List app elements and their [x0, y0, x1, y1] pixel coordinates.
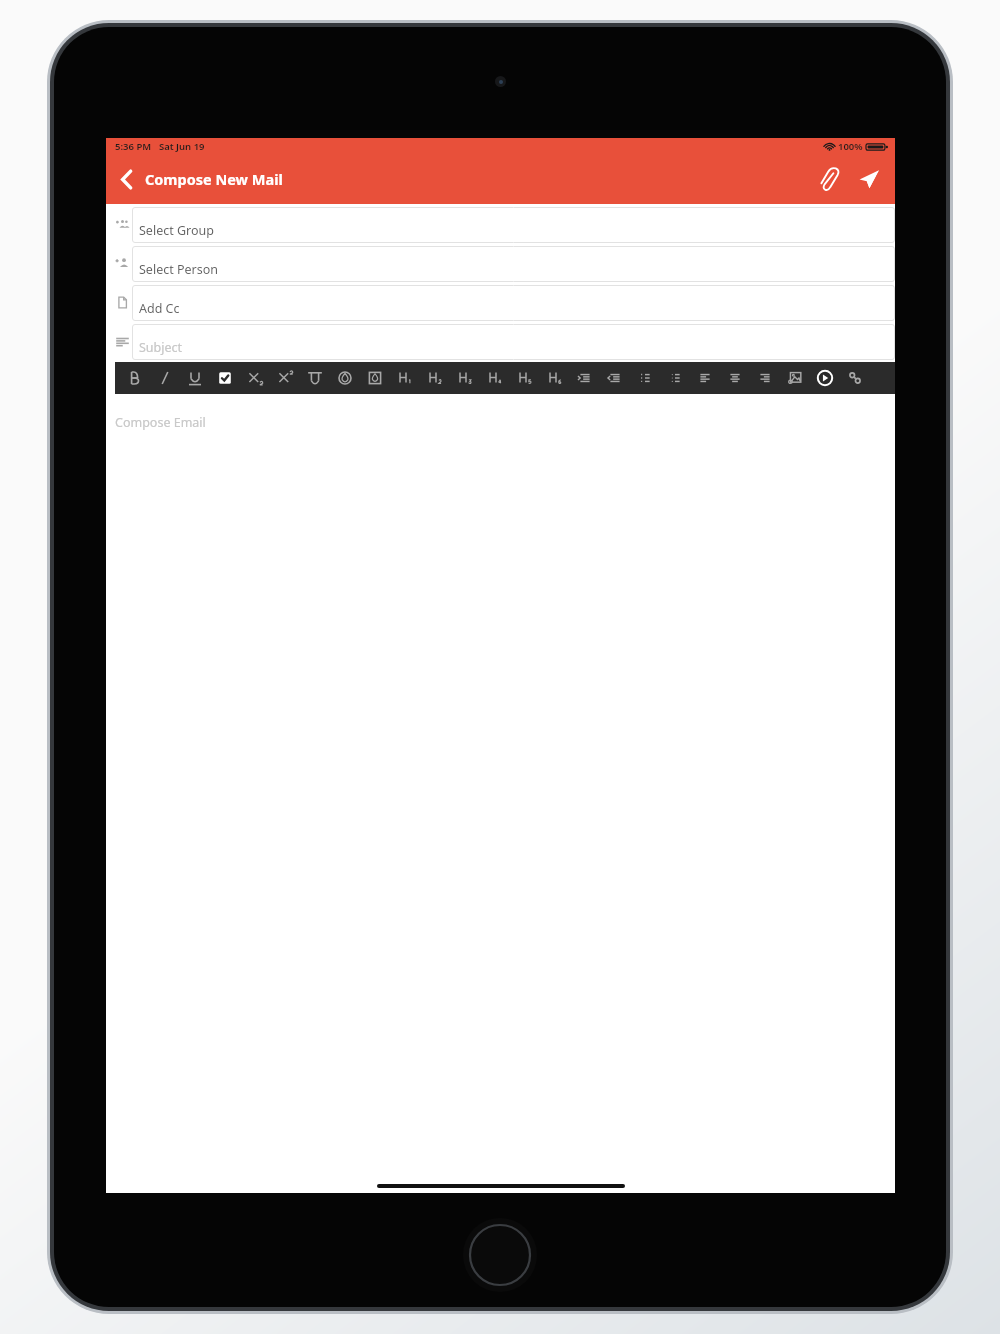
button[interactable]: Bulleted list: [660, 362, 690, 394]
button[interactable]: Subject: [106, 321, 895, 360]
staticText: 100%: [838, 140, 863, 153]
button[interactable]: Back: [111, 164, 283, 194]
button[interactable]: Checklist: [210, 362, 240, 394]
button[interactable]: Heading 6: [540, 362, 570, 394]
button[interactable]: Increase indent: [570, 362, 600, 394]
button[interactable]: Strikethrough: [300, 362, 330, 394]
button[interactable]: Add Cc: [106, 282, 895, 321]
button[interactable]: Decrease indent: [600, 362, 630, 394]
button[interactable]: Highlight color: [360, 362, 390, 394]
button[interactable]: Insert link: [840, 362, 870, 394]
staticText: Select Person: [139, 261, 219, 278]
button[interactable]: Underline: [180, 362, 210, 394]
button[interactable]: Numbered list: [630, 362, 660, 394]
staticText: Compose New Mail: [145, 169, 283, 189]
button[interactable]: Text color: [330, 362, 360, 394]
button[interactable]: Bold: [120, 362, 150, 394]
button[interactable]: Send: [851, 161, 887, 197]
button[interactable]: Select Person: [106, 243, 895, 282]
staticText: 5:36 PM: [115, 140, 152, 153]
button[interactable]: Attach file: [811, 161, 847, 197]
button[interactable]: Heading 2: [420, 362, 450, 394]
button[interactable]: Align right: [750, 362, 780, 394]
button[interactable]: Subscript: [240, 362, 270, 394]
staticText: Sat Jun 19: [159, 140, 205, 153]
staticText: Select Group: [139, 222, 214, 239]
button[interactable]: Insert media: [810, 362, 840, 394]
button[interactable]: Italic: [150, 362, 180, 394]
button[interactable]: Select Group: [106, 204, 895, 243]
button[interactable]: Heading 4: [480, 362, 510, 394]
button[interactable]: Align center: [720, 362, 750, 394]
staticText: Compose Email: [115, 414, 206, 431]
button[interactable]: Heading 5: [510, 362, 540, 394]
button[interactable]: Insert image: [780, 362, 810, 394]
staticText: Add Cc: [139, 300, 180, 317]
other: Back: [111, 164, 141, 194]
button[interactable]: Heading 3: [450, 362, 480, 394]
staticText: Subject: [139, 339, 183, 356]
button[interactable]: Align left: [690, 362, 720, 394]
button[interactable]: Superscript: [270, 362, 300, 394]
button[interactable]: Heading 1: [390, 362, 420, 394]
